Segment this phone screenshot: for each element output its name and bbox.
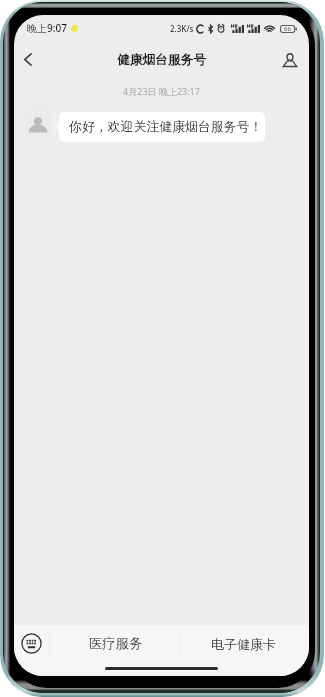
button[interactable]: Profile: [276, 41, 303, 76]
staticText: 你好，欢迎关注健康烟台服务号！: [69, 119, 263, 135]
button[interactable]: Keyboard: [14, 625, 49, 662]
button[interactable]: 医疗服务: [50, 625, 179, 662]
button[interactable]: 电子健康卡: [180, 625, 309, 662]
staticText: 4月23日 晚上23:17: [14, 85, 309, 97]
staticText: 66: [284, 25, 291, 33]
button[interactable]: Back: [14, 41, 41, 76]
staticText: 晚上9:07: [27, 21, 67, 35]
staticText: 医疗服务: [89, 635, 143, 652]
staticText: 健康烟台服务号: [117, 52, 206, 68]
staticText: 电子健康卡: [211, 636, 276, 652]
staticText: 2.3K/s: [170, 23, 194, 34]
